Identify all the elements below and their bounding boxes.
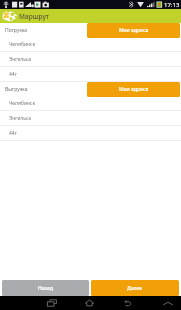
staticText: Маршрут xyxy=(19,12,49,21)
staticText: 17:13 xyxy=(164,1,180,9)
button[interactable]: Hide navigation bar xyxy=(155,296,181,310)
button[interactable]: 44г xyxy=(0,67,181,82)
button[interactable]: Челябинск xyxy=(0,96,181,111)
button[interactable]: Челябинск xyxy=(0,37,181,52)
staticText: Далее xyxy=(127,285,143,292)
staticText: Погрузка xyxy=(5,27,28,34)
button[interactable]: 44г xyxy=(0,126,181,141)
staticText: Энгельса xyxy=(9,56,32,63)
staticText: 44г xyxy=(9,130,17,137)
button[interactable]: Далее xyxy=(91,280,179,296)
staticText: Мои адреса xyxy=(119,86,149,93)
button[interactable]: Назад xyxy=(2,280,89,296)
staticText: Челябинск xyxy=(9,100,36,107)
staticText: Назад xyxy=(38,285,53,292)
button[interactable]: Home xyxy=(75,296,104,310)
button[interactable]: Энгельса xyxy=(0,52,181,67)
staticText: Мои адреса xyxy=(119,27,149,34)
button[interactable]: Мои адреса xyxy=(87,23,180,38)
button[interactable]: Back xyxy=(113,296,142,310)
button[interactable]: Мои адреса xyxy=(87,82,180,97)
staticText: Челябинск xyxy=(9,41,36,48)
staticText: 44г xyxy=(9,71,17,78)
staticText: Выгрузка xyxy=(5,86,28,93)
button[interactable]: Энгельса xyxy=(0,111,181,126)
button[interactable]: Recent apps xyxy=(37,296,66,310)
staticText: Энгельса xyxy=(9,115,32,122)
